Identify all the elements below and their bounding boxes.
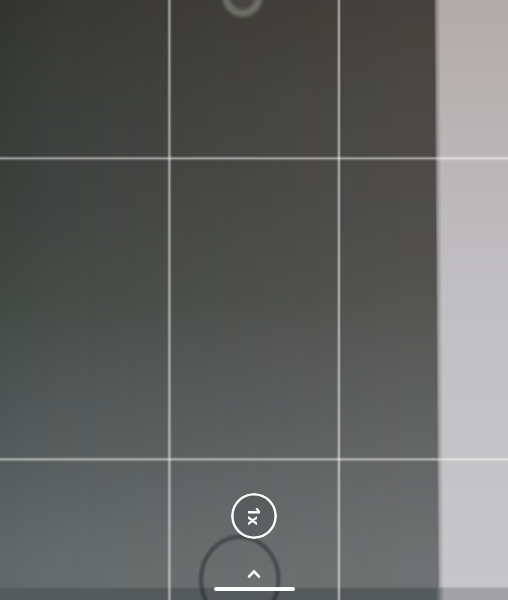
staticText: 1x [243, 506, 265, 525]
button[interactable]: Expand camera options [238, 558, 270, 590]
button[interactable]: Zoom 1x [231, 493, 277, 539]
